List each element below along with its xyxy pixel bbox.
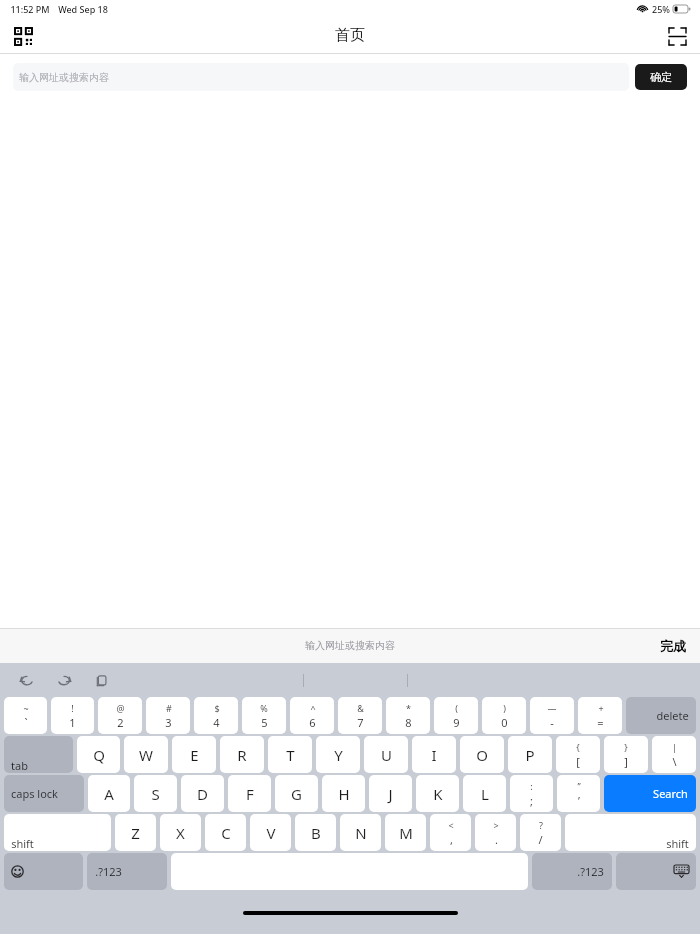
staticText: | (672, 741, 677, 753)
staticText: B (311, 823, 321, 843)
button[interactable]: : (510, 775, 553, 812)
button[interactable]: Y (316, 736, 360, 773)
button[interactable]: D (181, 775, 224, 812)
button[interactable]: shift (565, 814, 696, 851)
button[interactable]: T (268, 736, 312, 773)
button[interactable]: tab (4, 736, 73, 773)
button[interactable]: R (220, 736, 264, 773)
staticText: 首页 (335, 26, 365, 45)
button[interactable]: | (652, 736, 696, 773)
button[interactable]: caps lock (4, 775, 84, 812)
button[interactable]: > (475, 814, 516, 851)
staticText: ’ (578, 793, 580, 808)
button[interactable]: L (463, 775, 506, 812)
button[interactable]: N (340, 814, 381, 851)
staticText: S (151, 784, 160, 804)
button[interactable]: ? (520, 814, 561, 851)
staticText: Y (334, 745, 343, 765)
button[interactable]: ” (557, 775, 600, 812)
button[interactable]: B (295, 814, 336, 851)
button[interactable]: E (172, 736, 216, 773)
staticText: * (406, 702, 411, 714)
button[interactable]: K (416, 775, 459, 812)
button[interactable]: .?123 (87, 853, 167, 890)
button[interactable]: } (604, 736, 648, 773)
button[interactable]: % (242, 697, 286, 734)
staticText: Z (131, 823, 140, 843)
staticText: { (576, 741, 580, 753)
button[interactable]: S (134, 775, 177, 812)
staticText: E (190, 745, 199, 765)
button[interactable]: ( (434, 697, 478, 734)
staticText: X (176, 823, 185, 843)
button[interactable]: A (88, 775, 130, 812)
button[interactable]: Undo (14, 667, 40, 693)
staticText: U (381, 745, 392, 765)
button[interactable]: + (578, 697, 622, 734)
button[interactable]: 输入网址或搜索内容 (13, 63, 629, 91)
button[interactable]: G (275, 775, 318, 812)
button[interactable]: U (364, 736, 408, 773)
button[interactable]: F (228, 775, 271, 812)
staticText: R (237, 745, 247, 765)
staticText: delete (656, 708, 689, 723)
button[interactable]: @ (98, 697, 142, 734)
staticText: Wed Sep 18 (58, 3, 108, 15)
button[interactable]: delete (626, 697, 696, 734)
staticText: 确定 (650, 70, 672, 84)
button[interactable]: — (530, 697, 574, 734)
button[interactable]: Emoji (4, 853, 83, 890)
button[interactable]: Z (115, 814, 156, 851)
button[interactable]: ^ (290, 697, 334, 734)
button[interactable]: W (124, 736, 168, 773)
button[interactable]: I (412, 736, 456, 773)
staticText: P (525, 745, 535, 765)
staticText: 2 (117, 715, 124, 730)
button[interactable]: Scan QR code (10, 23, 36, 49)
button[interactable]: M (385, 814, 426, 851)
staticText: 完成 (660, 638, 686, 654)
button[interactable]: C (205, 814, 246, 851)
staticText: \ (672, 754, 677, 769)
staticText: & (357, 702, 364, 714)
button[interactable]: # (146, 697, 190, 734)
button[interactable]: Paste (88, 667, 114, 693)
button[interactable]: P (508, 736, 552, 773)
staticText: ( (455, 702, 458, 714)
button[interactable]: { (556, 736, 600, 773)
button[interactable]: $ (194, 697, 238, 734)
button[interactable]: & (338, 697, 382, 734)
button[interactable]: < (430, 814, 471, 851)
staticText: V (266, 823, 276, 843)
button[interactable]: .?123 (532, 853, 612, 890)
button[interactable]: Search (604, 775, 696, 812)
staticText: K (433, 784, 443, 804)
button[interactable]: X (160, 814, 201, 851)
button[interactable]: 完成 (660, 638, 686, 654)
button[interactable]: Scan (664, 23, 690, 49)
button[interactable]: ! (51, 697, 94, 734)
staticText: + (598, 702, 604, 714)
staticText: . (495, 832, 498, 847)
button[interactable]: * (386, 697, 430, 734)
staticText: ; (530, 793, 533, 808)
button[interactable]: ) (482, 697, 526, 734)
button[interactable]: ~ (4, 697, 47, 734)
button[interactable]: O (460, 736, 504, 773)
staticText: 1 (69, 715, 76, 730)
staticText: , (450, 832, 453, 847)
button[interactable]: J (369, 775, 412, 812)
button[interactable]: H (322, 775, 365, 812)
button[interactable]: Q (77, 736, 120, 773)
button[interactable]: 确定 (635, 64, 687, 90)
button[interactable]: shift (4, 814, 111, 851)
button[interactable]: V (250, 814, 291, 851)
staticText: ? (539, 819, 543, 831)
staticText: : (530, 780, 533, 792)
staticText: Search (653, 786, 688, 801)
staticText: M (399, 823, 413, 843)
button[interactable]: Hide keyboard (616, 853, 696, 890)
staticText: 25% (652, 3, 670, 15)
button[interactable]: Redo (51, 667, 77, 693)
